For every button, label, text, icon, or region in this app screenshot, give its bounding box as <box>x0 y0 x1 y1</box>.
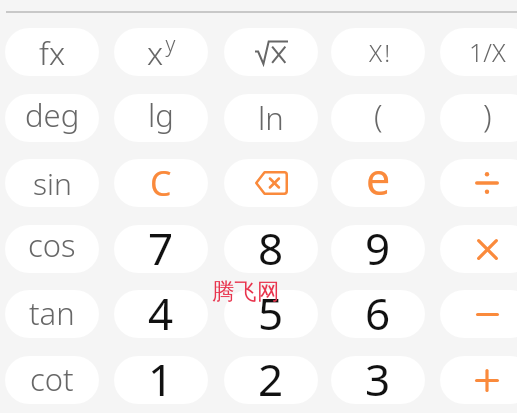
staticText: 6 <box>365 290 391 331</box>
staticText: cos <box>28 225 76 266</box>
button[interactable]: 1 <box>114 356 208 404</box>
staticText: C <box>150 160 172 206</box>
button[interactable]: 7 <box>114 225 208 273</box>
button[interactable]: 1/X <box>440 28 517 76</box>
staticText: ) <box>483 94 492 136</box>
button[interactable]: 5 <box>224 290 318 338</box>
staticText: 腾飞网 <box>212 277 280 305</box>
staticText: lg <box>148 94 174 136</box>
button[interactable]: Minus <box>440 290 517 338</box>
staticText: ( <box>374 94 383 136</box>
button[interactable]: Plus <box>440 356 517 404</box>
button[interactable]: lg <box>114 94 208 142</box>
button[interactable]: x y <box>114 28 208 76</box>
button[interactable]: ) <box>440 94 517 142</box>
button[interactable]: 6 <box>331 290 425 338</box>
button[interactable]: ln <box>224 94 318 142</box>
button[interactable]: 4 <box>114 290 208 338</box>
button[interactable]: e <box>331 159 425 207</box>
staticText: sin <box>33 163 72 204</box>
button[interactable]: tan <box>5 290 99 338</box>
staticText: 1/X <box>469 35 506 69</box>
staticText: cot <box>30 358 74 400</box>
staticText: e <box>366 159 391 197</box>
staticText: 8 <box>258 225 284 266</box>
button[interactable]: 8 <box>224 225 318 273</box>
staticText: 1 <box>148 356 174 397</box>
staticText: 7 <box>148 225 174 266</box>
staticText: tan <box>29 292 75 334</box>
button[interactable]: cot <box>5 356 99 404</box>
staticText: ln <box>258 97 284 139</box>
button[interactable]: X! <box>331 28 425 76</box>
staticText: deg <box>25 94 80 136</box>
staticText: x y <box>147 30 176 75</box>
button[interactable]: Square root <box>224 28 318 76</box>
button[interactable]: Backspace <box>224 159 318 207</box>
button[interactable]: 2 <box>224 356 318 404</box>
staticText: X! <box>369 36 393 69</box>
button[interactable]: sin <box>5 159 99 207</box>
button[interactable]: deg <box>5 94 99 142</box>
button[interactable]: fx <box>5 28 99 76</box>
staticText: 5 <box>258 290 284 331</box>
staticText: 4 <box>148 290 174 331</box>
staticText: fx <box>39 31 66 75</box>
button[interactable]: cos <box>5 225 99 273</box>
staticText: 3 <box>365 356 391 397</box>
button[interactable]: Divide <box>440 159 517 207</box>
button[interactable]: C <box>114 159 208 207</box>
button[interactable]: ( <box>331 94 425 142</box>
staticText: 2 <box>258 356 284 397</box>
button[interactable]: Multiply <box>440 225 517 273</box>
button[interactable]: 9 <box>331 225 425 273</box>
button[interactable]: 3 <box>331 356 425 404</box>
staticText: 9 <box>365 225 391 266</box>
